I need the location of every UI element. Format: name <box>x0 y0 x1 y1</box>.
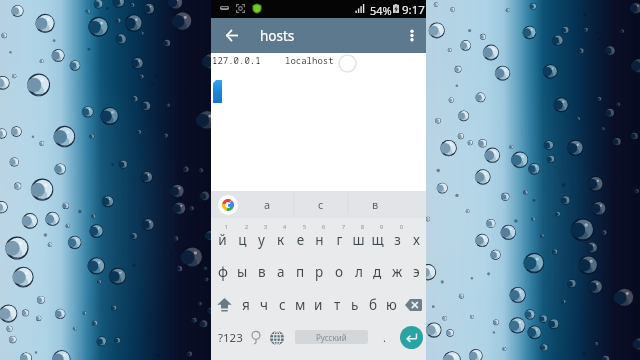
staticText: ш <box>349 231 368 249</box>
button[interactable]: т <box>328 288 346 321</box>
staticText: м <box>295 296 306 314</box>
button[interactable]: 2 <box>233 222 252 255</box>
staticText: щ <box>368 231 387 249</box>
button[interactable]: с <box>294 191 348 218</box>
button[interactable]: б <box>364 288 382 321</box>
button[interactable]: с <box>273 288 291 321</box>
staticText: а <box>264 197 271 212</box>
staticText: 54% <box>370 3 392 18</box>
staticText: э <box>413 263 420 281</box>
button[interactable]: ж <box>388 255 407 288</box>
button[interactable]: я <box>237 288 255 321</box>
staticText: 127.0.0.1 <box>212 54 261 66</box>
staticText: х <box>407 231 426 249</box>
button[interactable]: а <box>271 255 290 288</box>
button[interactable]: 4 <box>271 222 290 255</box>
button[interactable]: д <box>368 255 387 288</box>
staticText: ц <box>233 231 252 249</box>
staticText: д <box>373 263 382 281</box>
staticText: hosts <box>260 27 295 45</box>
staticText: localhost <box>285 54 334 66</box>
button[interactable]: ь <box>346 288 364 321</box>
button[interactable]: Shift <box>211 288 237 321</box>
button[interactable]: о <box>330 255 349 288</box>
staticText: 3 <box>256 223 275 231</box>
staticText: в <box>258 263 266 281</box>
button[interactable]: Backspace <box>400 288 426 321</box>
button[interactable]: ф <box>213 255 232 288</box>
button[interactable]: 7 <box>330 222 349 255</box>
button[interactable]: л <box>349 255 368 288</box>
button[interactable]: Emoji <box>244 321 268 354</box>
button[interactable]: 6 <box>310 222 329 255</box>
staticText: б <box>369 296 378 314</box>
button[interactable]: в <box>348 191 402 218</box>
staticText: . <box>383 330 386 345</box>
button[interactable]: Change keyboard language <box>265 321 289 354</box>
staticText: 2 <box>237 223 256 231</box>
staticText: т <box>334 296 341 314</box>
staticText: 9:17 <box>402 2 425 18</box>
button[interactable]: Русский <box>295 330 368 344</box>
button[interactable]: 0 <box>388 222 407 255</box>
staticText: я <box>242 296 250 314</box>
staticText: ф <box>218 263 228 281</box>
staticText: з <box>388 231 407 249</box>
button[interactable]: п <box>291 255 310 288</box>
staticText: с <box>279 296 286 314</box>
staticText: й <box>213 231 232 249</box>
staticText: ж <box>392 263 403 281</box>
staticText: 7 <box>334 223 353 231</box>
button[interactable]: 1 <box>213 222 232 255</box>
button[interactable]: . <box>374 321 394 354</box>
staticText: о <box>335 263 344 281</box>
staticText: п <box>296 263 305 281</box>
button[interactable]: м <box>291 288 309 321</box>
staticText: ы <box>237 263 248 281</box>
staticText: р <box>315 263 324 281</box>
button[interactable]: 3 <box>252 222 271 255</box>
staticText: л <box>355 263 363 281</box>
button[interactable]: ю <box>382 288 400 321</box>
staticText: 5 <box>295 223 314 231</box>
button[interactable]: 5 <box>291 222 310 255</box>
button[interactable]: More options <box>397 18 426 53</box>
button[interactable]: ?123 <box>213 321 248 354</box>
button[interactable]: х <box>407 222 426 255</box>
button[interactable]: и <box>309 288 327 321</box>
button[interactable]: ч <box>255 288 273 321</box>
staticText: ?123 <box>218 330 243 346</box>
staticText: а <box>277 263 285 281</box>
staticText: ь <box>351 296 359 314</box>
button[interactable]: в <box>252 255 271 288</box>
staticText: к <box>271 231 290 249</box>
staticText: ю <box>386 296 397 314</box>
button[interactable]: 9 <box>368 222 387 255</box>
staticText: 0 <box>392 223 411 231</box>
staticText: 8 <box>353 223 372 231</box>
staticText: Русский <box>316 332 347 343</box>
button[interactable]: э <box>407 255 426 288</box>
button[interactable]: 8 <box>349 222 368 255</box>
button[interactable]: а <box>240 191 294 218</box>
button[interactable]: ы <box>233 255 252 288</box>
staticText: 4 <box>275 223 294 231</box>
staticText: и <box>314 296 323 314</box>
button[interactable]: Navigate up <box>216 18 247 53</box>
button[interactable]: Google <box>218 195 238 215</box>
button[interactable]: Enter <box>396 321 426 354</box>
staticText: с <box>318 197 324 212</box>
staticText: 9 <box>372 223 391 231</box>
staticText: г <box>330 231 349 249</box>
staticText: 6 <box>314 223 333 231</box>
staticText: ч <box>260 296 268 314</box>
button[interactable]: р <box>310 255 329 288</box>
staticText: в <box>372 197 379 212</box>
staticText: 1 <box>217 223 236 231</box>
staticText: е <box>291 231 310 249</box>
staticText: у <box>252 231 271 249</box>
staticText: н <box>310 231 329 249</box>
